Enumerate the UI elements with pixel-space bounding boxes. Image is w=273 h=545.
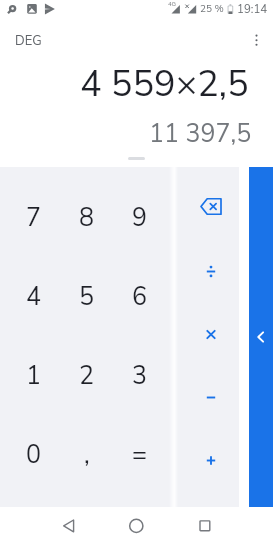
button[interactable]: More options [241,24,273,56]
button[interactable]: Recent apps [182,507,227,545]
button[interactable]: Multiply [173,303,249,366]
staticText: 9 [132,201,148,235]
button[interactable]: 2 [60,336,113,415]
button[interactable]: 3 [113,336,166,415]
button[interactable]: 0 [7,415,60,494]
staticText: 3 [132,359,148,393]
staticText: 0 [26,438,42,472]
button[interactable]: , [60,415,113,494]
button[interactable]: Divide [173,240,249,303]
staticText: 1 [26,359,42,393]
button[interactable]: Back [46,507,91,545]
staticText: 19:14 [237,1,268,17]
button[interactable]: 4 [7,257,60,336]
button[interactable]: Subtract [173,366,249,429]
staticText: 11 397,5 [149,117,252,151]
button[interactable]: Drag handle [128,157,145,160]
staticText: 8 [79,201,95,235]
staticText: 4 [26,280,42,314]
button[interactable]: 7 [7,178,60,257]
button[interactable]: 9 [113,178,166,257]
button[interactable]: 6 [113,257,166,336]
button[interactable]: 1 [7,336,60,415]
button[interactable]: Home [114,507,159,545]
staticText: 7 [26,201,42,235]
button[interactable]: Open history panel [249,167,273,507]
button[interactable]: DEG [15,32,42,50]
staticText: 4G [168,0,176,8]
button[interactable]: 5 [60,257,113,336]
staticText: 4 559×2,5 [80,60,249,109]
button[interactable]: 8 [60,178,113,257]
button[interactable]: = [113,415,166,494]
staticText: 5 [79,280,95,314]
staticText: = [132,438,148,472]
staticText: 25 % [200,2,224,16]
button[interactable]: Add [173,429,249,492]
staticText: 6 [132,280,148,314]
staticText: , [84,438,90,472]
button[interactable]: Backspace [173,178,249,240]
staticText: 2 [79,359,95,393]
